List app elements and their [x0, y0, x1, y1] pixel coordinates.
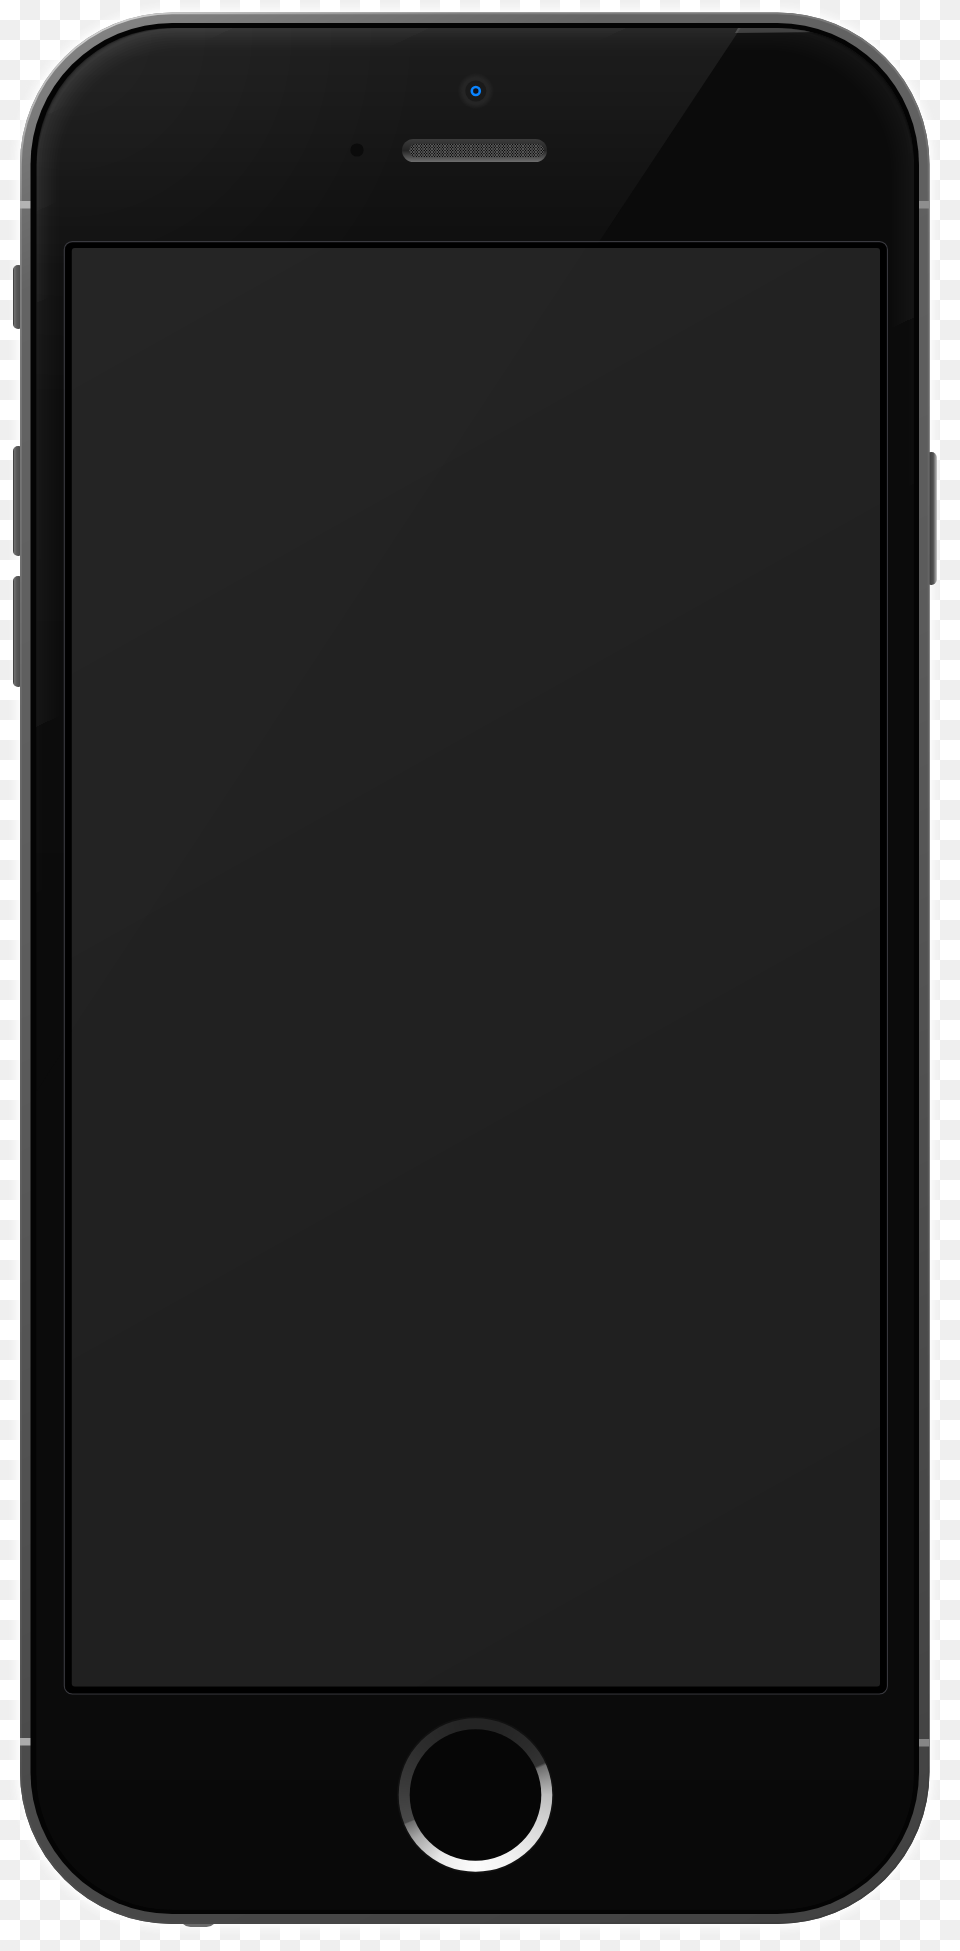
button[interactable]: Screen — [65, 242, 885, 1692]
button[interactable]: Ring silent switch — [13, 265, 24, 329]
button[interactable]: Volume down — [13, 576, 24, 687]
button[interactable]: Home button — [399, 1718, 553, 1872]
button[interactable]: Power button — [926, 452, 937, 585]
button[interactable]: Volume up — [13, 446, 24, 556]
